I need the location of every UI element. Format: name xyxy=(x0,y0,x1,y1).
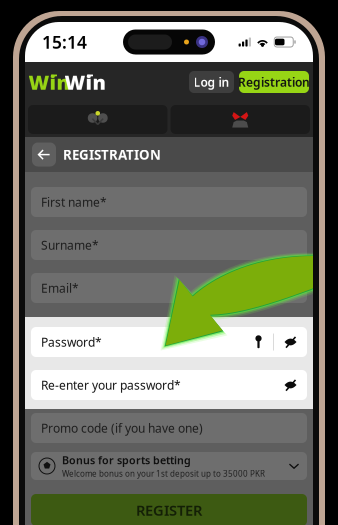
button[interactable]: Registration xyxy=(239,71,309,93)
button[interactable]: Re-enter your password* xyxy=(31,370,307,400)
staticText: Re-enter your password* xyxy=(41,377,181,393)
staticText: Password* xyxy=(41,334,102,350)
staticText: Log in xyxy=(193,74,229,90)
button[interactable]: Promo code (if you have one) xyxy=(31,413,307,443)
button[interactable]: Motorsport xyxy=(170,105,310,134)
button[interactable]: Back xyxy=(32,142,56,166)
button[interactable]: Log in xyxy=(189,71,234,93)
staticText: Registration xyxy=(238,74,310,90)
staticText: Welcome bonus on your 1st deposit up to … xyxy=(62,468,265,479)
button[interactable]: Surname* xyxy=(31,230,307,260)
staticText: First name* xyxy=(41,194,107,210)
button[interactable]: REGISTER xyxy=(31,494,307,525)
staticText: 15:14 xyxy=(42,30,87,53)
staticText: Promo code (if you have one) xyxy=(41,420,203,436)
button[interactable]: Bonus for sports betting xyxy=(31,452,307,480)
button[interactable]: Tennis xyxy=(28,105,167,134)
staticText: REGISTER xyxy=(136,500,202,520)
button[interactable]: Email* xyxy=(31,273,307,303)
staticText: Win xyxy=(28,69,69,95)
button[interactable]: Password* xyxy=(31,327,307,357)
staticText: Surname* xyxy=(41,237,99,253)
staticText: Win xyxy=(64,69,105,95)
staticText: Bonus for sports betting xyxy=(62,453,191,467)
staticText: REGISTRATION xyxy=(63,146,161,163)
button[interactable]: First name* xyxy=(31,187,307,217)
staticText: Email* xyxy=(41,280,79,296)
